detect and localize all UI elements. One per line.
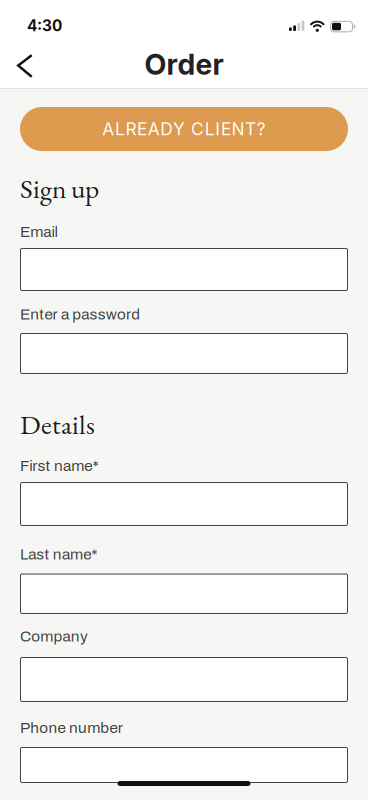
staticText: Email (20, 223, 58, 240)
staticText: Last name* (20, 546, 97, 563)
staticText: 4:30 (27, 16, 62, 35)
staticText: Order (144, 47, 223, 82)
button[interactable]: ALREADY CLIENT? (20, 107, 348, 151)
button[interactable]: Email (20, 248, 348, 291)
button[interactable]: Company (20, 657, 348, 702)
staticText: Phone number (20, 719, 123, 736)
button[interactable]: Last name (20, 573, 348, 614)
button[interactable]: First name (20, 482, 348, 526)
staticText: Enter a password (20, 306, 140, 323)
staticText: First name* (20, 457, 98, 474)
button[interactable]: Phone number (20, 747, 348, 783)
staticText: Sign up (20, 170, 99, 206)
button[interactable]: Enter a password (20, 333, 348, 374)
staticText: ALREADY CLIENT? (102, 118, 266, 139)
staticText: Company (20, 628, 88, 645)
staticText: Details (20, 406, 95, 442)
button[interactable]: Back (9, 46, 41, 86)
